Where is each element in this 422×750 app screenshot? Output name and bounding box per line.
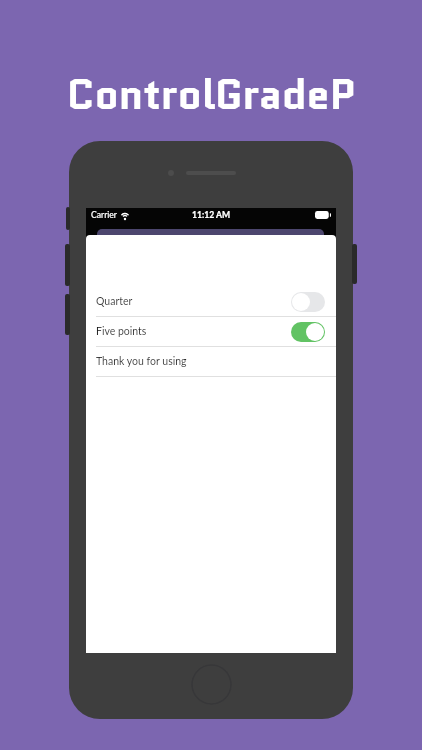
- staticText: Quarter: [96, 295, 133, 308]
- button[interactable]: Five points: [86, 317, 336, 346]
- button[interactable]: Toggle off: [291, 292, 325, 312]
- staticText: Carrier: [91, 210, 117, 220]
- button[interactable]: Quarter: [86, 287, 336, 316]
- button[interactable]: Thank you for using: [86, 347, 336, 376]
- button[interactable]: Toggle on: [291, 322, 325, 342]
- staticText: Five points: [96, 325, 147, 338]
- staticText: ControlGradeP: [0, 65, 422, 124]
- staticText: Thank you for using: [96, 355, 187, 368]
- staticText: 11:12 AM: [192, 210, 231, 220]
